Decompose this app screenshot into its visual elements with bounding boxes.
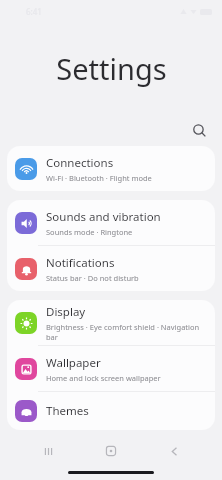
staticText: Display bbox=[46, 304, 86, 320]
staticText: Sounds and vibration bbox=[46, 209, 161, 225]
staticText: Settings bbox=[56, 49, 167, 88]
staticText: Notifications bbox=[46, 255, 115, 271]
staticText: Sounds mode · Ringtone bbox=[46, 227, 133, 237]
staticText: Status bar · Do not disturb bbox=[46, 273, 139, 283]
button[interactable]: Sounds and vibration bbox=[7, 200, 215, 245]
staticText: Wallpaper bbox=[46, 355, 101, 371]
button[interactable]: Notifications bbox=[7, 246, 215, 291]
button[interactable]: Recents bbox=[33, 436, 63, 466]
staticText: Home and lock screen wallpaper bbox=[46, 373, 161, 383]
staticText: 6:41 bbox=[26, 6, 42, 17]
staticText: Themes bbox=[46, 403, 89, 419]
button[interactable]: Themes bbox=[7, 392, 215, 430]
button[interactable]: Back bbox=[159, 436, 189, 466]
staticText: Brightness · Eye comfort shield · Naviga… bbox=[46, 322, 205, 342]
staticText: Wi-Fi · Bluetooth · Flight mode bbox=[46, 173, 152, 183]
button[interactable]: Connections bbox=[7, 146, 215, 191]
button[interactable]: Home bbox=[96, 436, 126, 466]
button[interactable]: Wallpaper bbox=[7, 346, 215, 391]
button[interactable]: Display bbox=[7, 300, 215, 345]
staticText: Connections bbox=[46, 155, 114, 171]
button[interactable]: Search bbox=[186, 117, 212, 143]
